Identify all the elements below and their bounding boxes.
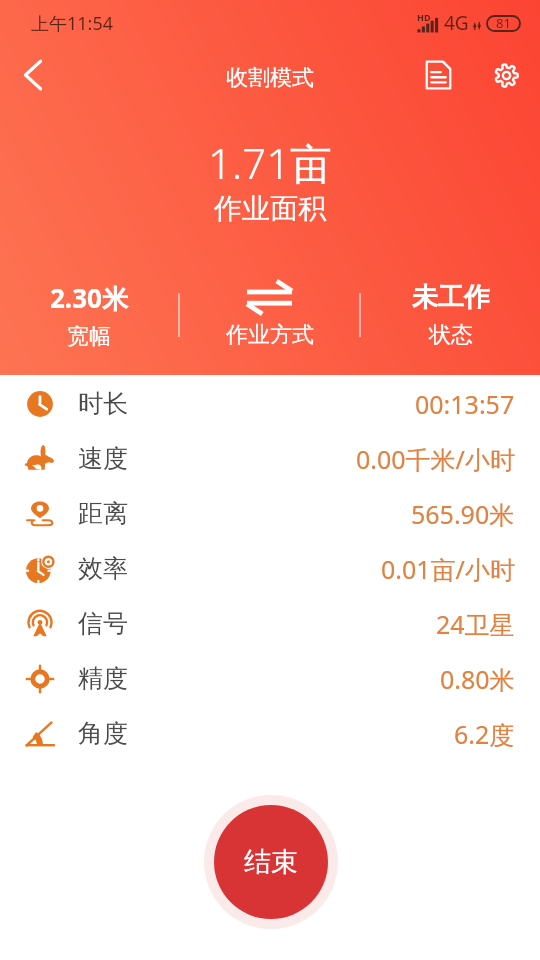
staticText: 565.90米 — [411, 497, 515, 531]
button[interactable]: 未工作 — [361, 281, 540, 349]
staticText: 6.2度 — [454, 717, 515, 751]
button[interactable]: 角度 — [0, 706, 540, 761]
button[interactable]: 效率 — [0, 541, 540, 596]
staticText: 结束 — [244, 845, 298, 879]
button[interactable]: 时长 — [0, 376, 540, 431]
staticText: 81 — [496, 14, 511, 32]
button[interactable]: 速度 — [0, 431, 540, 486]
staticText: 4G — [444, 10, 469, 36]
staticText: 速度 — [78, 443, 128, 474]
staticText: 1.71亩 — [208, 134, 333, 191]
staticText: 00:13:57 — [415, 387, 515, 421]
button[interactable]: 结束 — [204, 795, 338, 929]
staticText: 收割模式 — [226, 64, 314, 92]
staticText: 时长 — [78, 388, 128, 419]
button[interactable]: 信号 — [0, 596, 540, 651]
button[interactable]: Back — [6, 48, 60, 102]
staticText: 作业面积 — [214, 191, 326, 226]
staticText: 0.80米 — [440, 662, 515, 696]
staticText: 作业方式 — [226, 321, 314, 349]
staticText: 未工作 — [412, 281, 490, 314]
staticText: 24卫星 — [436, 607, 515, 641]
staticText: 效率 — [78, 553, 128, 584]
button[interactable]: 距离 — [0, 486, 540, 541]
staticText: 精度 — [78, 663, 128, 694]
staticText: 角度 — [78, 718, 128, 749]
staticText: 宽幅 — [67, 323, 111, 351]
button[interactable]: 精度 — [0, 651, 540, 706]
button[interactable]: Records — [410, 47, 466, 103]
button[interactable]: 作业方式 — [180, 281, 359, 349]
staticText: 距离 — [78, 498, 128, 529]
staticText: 上午11:54 — [31, 11, 114, 36]
staticText: 2.30米 — [50, 280, 128, 316]
staticText: 0.01亩/小时 — [381, 552, 515, 586]
staticText: 信号 — [78, 608, 128, 639]
staticText: 0.00千米/小时 — [356, 442, 515, 476]
staticText: 状态 — [429, 321, 473, 349]
staticText: HD — [417, 11, 431, 23]
button[interactable]: 2.30米 — [0, 280, 178, 351]
button[interactable]: Settings — [478, 47, 534, 103]
